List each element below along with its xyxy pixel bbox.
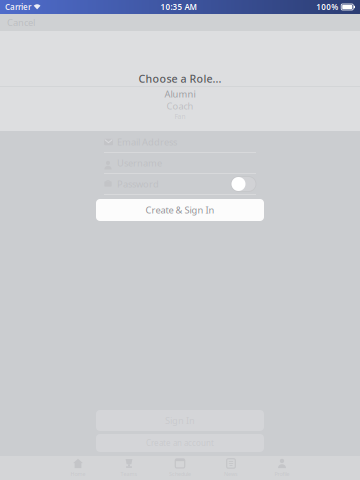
staticText: 10:35 AM	[160, 2, 196, 12]
staticText: Coach	[166, 100, 193, 112]
button[interactable]: Username	[104, 153, 256, 174]
staticText: Email Address	[117, 136, 177, 148]
staticText: Create an account	[146, 438, 214, 448]
staticText: Username	[117, 157, 162, 169]
staticText: Alumni	[164, 88, 195, 100]
staticText: Sign In	[165, 414, 195, 427]
button[interactable]: Home	[52, 456, 103, 480]
button[interactable]: Cancel	[0, 14, 42, 31]
staticText: Fan	[174, 112, 185, 121]
button[interactable]: Create & Sign In	[96, 199, 264, 221]
staticText: Carrier	[5, 2, 31, 12]
button[interactable]: Schedule	[154, 456, 205, 480]
button[interactable]: Email Address	[104, 132, 256, 153]
staticText: Choose a Role...	[138, 71, 221, 86]
staticText: News	[224, 470, 238, 478]
staticText: Password	[117, 178, 159, 190]
staticText: Cancel	[7, 16, 35, 29]
staticText: Create & Sign In	[145, 204, 214, 216]
staticText: 100%	[316, 2, 338, 12]
button[interactable]: Password	[104, 174, 256, 195]
